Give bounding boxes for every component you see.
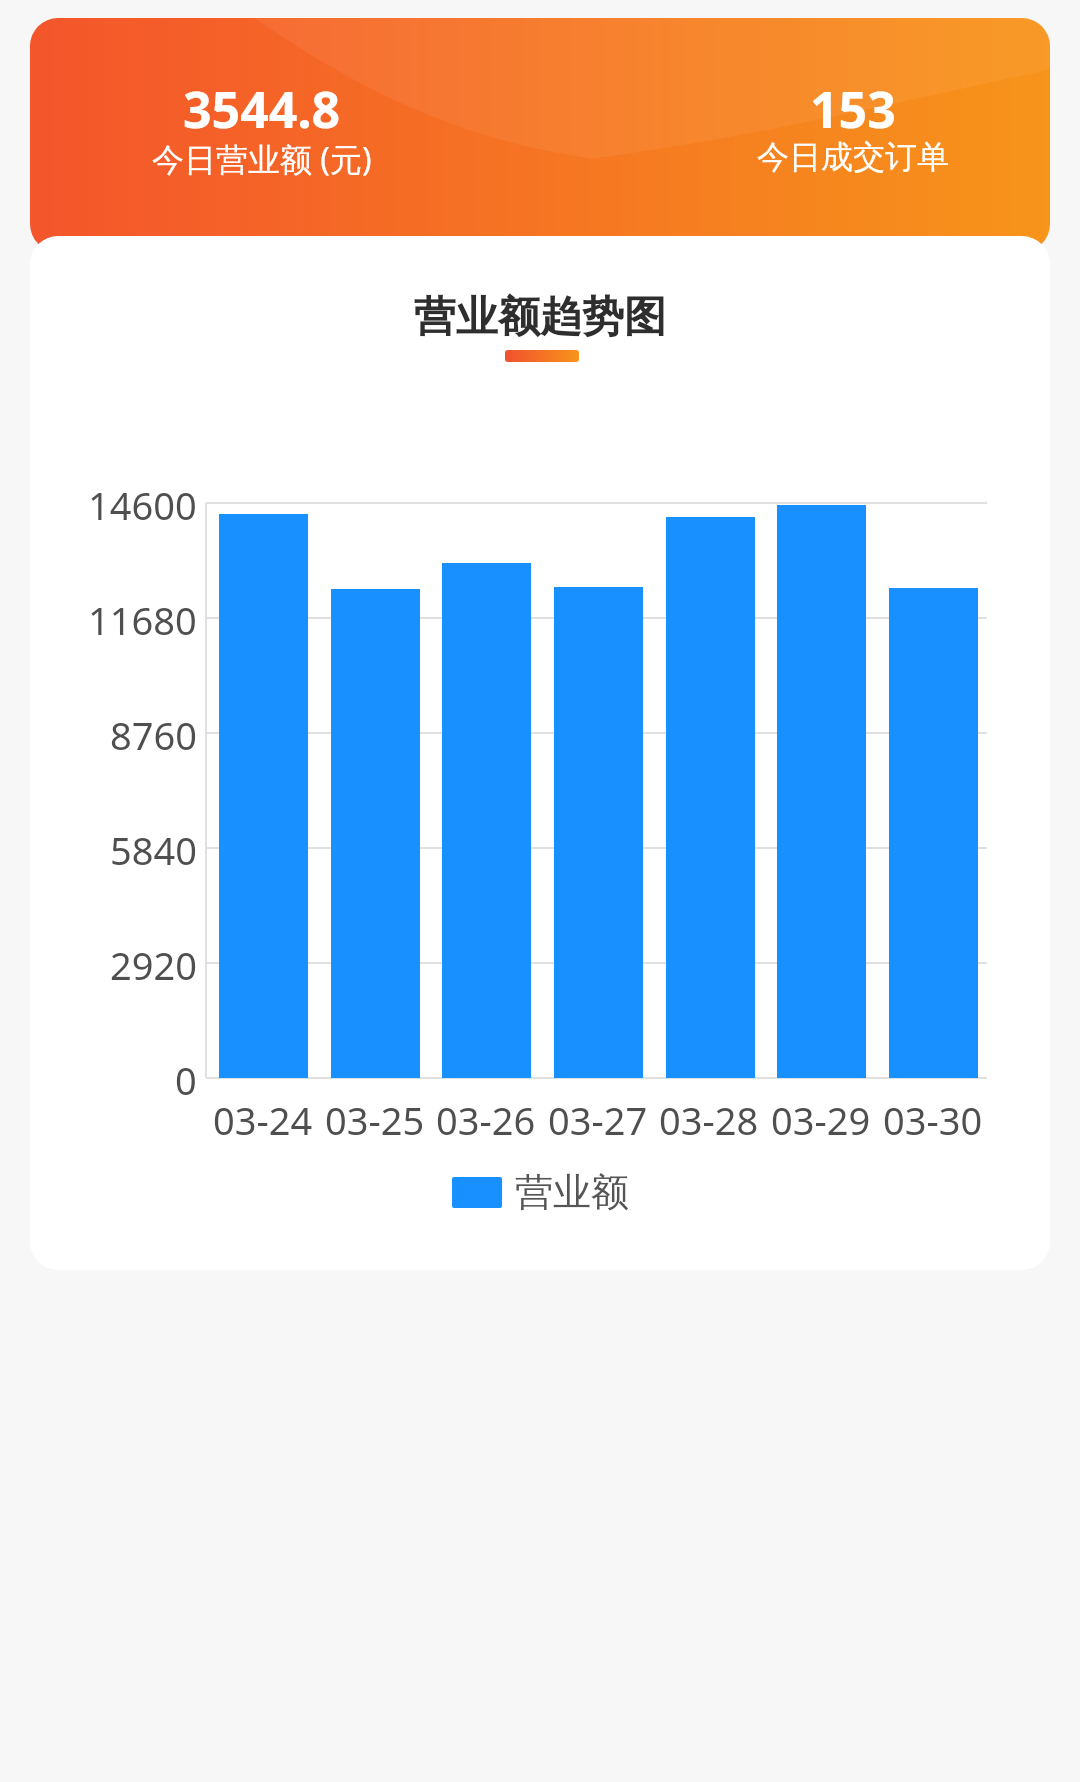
staticText: 8760 (110, 709, 197, 757)
staticText: 今日营业额 (元) (152, 137, 372, 177)
staticText: 153 (810, 75, 896, 135)
staticText: 2920 (110, 939, 197, 987)
staticText: 03-25 (325, 1094, 425, 1142)
staticText: 营业额 (515, 1168, 629, 1216)
button[interactable]: 3544.8 (30, 18, 1050, 252)
staticText: 03-24 (213, 1094, 313, 1142)
staticText: 03-29 (771, 1094, 871, 1142)
staticText: 14600 (88, 479, 197, 527)
staticText: 03-28 (659, 1094, 759, 1142)
staticText: 今日成交订单 (757, 137, 949, 177)
staticText: 03-27 (548, 1094, 648, 1142)
staticText: 5840 (110, 824, 197, 872)
staticText: 3544.8 (183, 75, 341, 135)
button[interactable]: 营业额 (452, 1168, 629, 1216)
staticText: 0 (175, 1054, 197, 1102)
staticText: 03-30 (883, 1094, 983, 1142)
staticText: 11680 (88, 594, 197, 642)
staticText: 营业额趋势图 (414, 291, 666, 344)
staticText: 03-26 (436, 1094, 536, 1142)
